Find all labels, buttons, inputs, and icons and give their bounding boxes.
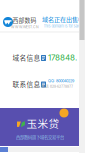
staticText: 域名信息 — [12, 53, 40, 62]
staticText: WWW.WEST.CN — [11, 25, 39, 29]
staticText: 西部数码 — [12, 16, 36, 24]
staticText: 域名正在出售中 — [42, 15, 84, 23]
staticText: 玉米贷 — [26, 115, 59, 131]
staticText: 西部数码旗下域名交易平台 — [16, 134, 64, 140]
staticText: 联系信息 — [12, 79, 40, 89]
staticText: QQ: 800040229 — [48, 79, 74, 83]
staticText: 178848. — [48, 53, 77, 62]
staticText: 电话 028-62778877 — [41, 83, 73, 89]
staticText: This domain is for sale — [43, 24, 80, 28]
